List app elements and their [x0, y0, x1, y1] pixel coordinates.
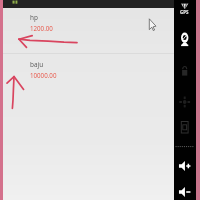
button[interactable]: GPS	[174, 1, 196, 14]
button[interactable]: baju	[3, 60, 174, 79]
button[interactable]: Lock	[174, 67, 196, 79]
staticText: 10000.00	[30, 71, 57, 79]
button[interactable]: Volume up	[174, 158, 196, 172]
button[interactable]: Camera	[174, 32, 196, 47]
staticText: 1200.00	[30, 24, 53, 32]
button[interactable]: Volume down	[174, 184, 196, 198]
staticText: GPS	[180, 9, 189, 15]
button[interactable]: Rotate	[174, 97, 196, 111]
staticText: baju	[30, 60, 44, 69]
button[interactable]: hp	[3, 13, 174, 32]
staticText: hp	[30, 13, 38, 22]
button[interactable]: Screenshot	[174, 118, 196, 132]
